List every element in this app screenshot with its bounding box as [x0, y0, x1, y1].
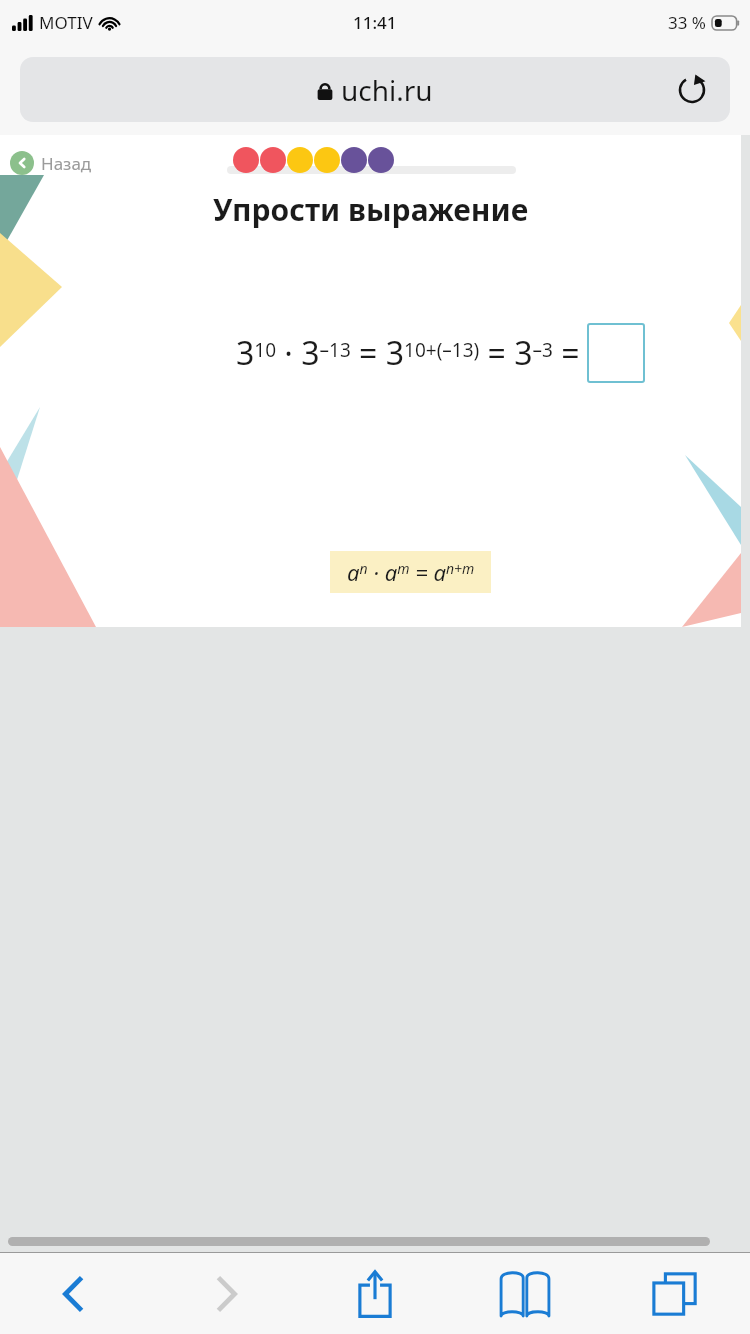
staticText: 11:41: [353, 11, 397, 34]
button[interactable]: Share: [300, 1253, 450, 1334]
staticText: Назад: [41, 152, 92, 175]
staticText: uchi.ru: [341, 71, 433, 109]
staticText: MOTIV: [39, 11, 93, 34]
button[interactable]: Reload: [672, 70, 712, 110]
button[interactable]: Back: [0, 1253, 150, 1334]
button[interactable]: Bookmarks: [450, 1253, 600, 1334]
staticText: Упрости выражение: [213, 189, 529, 230]
button[interactable]: uchi.ru: [20, 57, 730, 122]
button[interactable]: Назад: [10, 151, 92, 175]
staticText: 310 · 3–13 = 310+(–13) = 3–3 =: [236, 331, 580, 375]
staticText: an · am = an+m: [347, 557, 475, 587]
button[interactable]: Tabs: [600, 1253, 750, 1334]
staticText: 33 %: [668, 11, 706, 34]
button[interactable]: Forward: [150, 1253, 300, 1334]
button[interactable]: Answer field: [587, 323, 645, 383]
